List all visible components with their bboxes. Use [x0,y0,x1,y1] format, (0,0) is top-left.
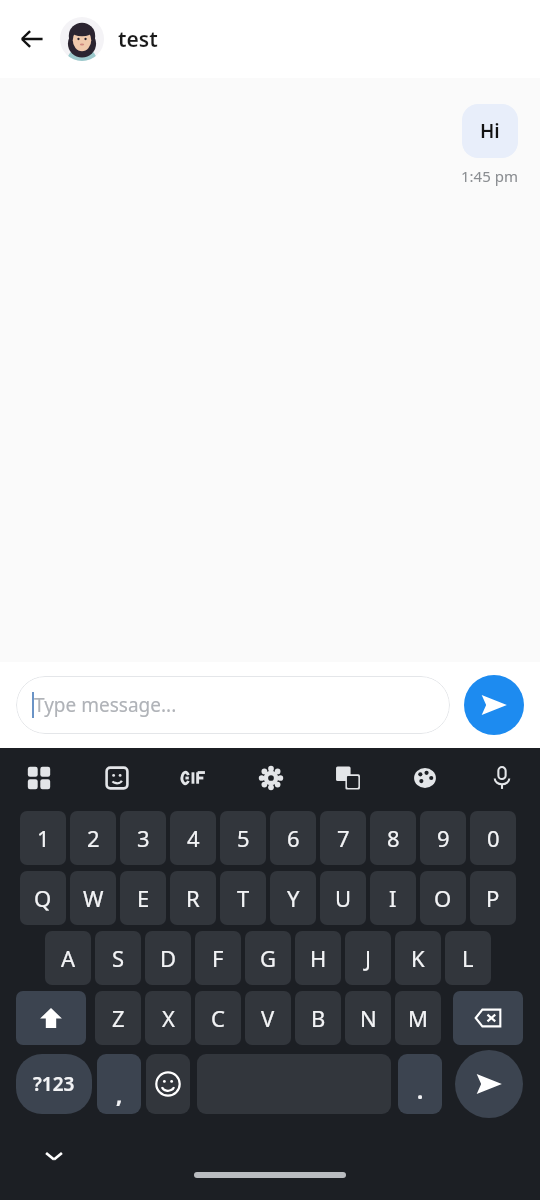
staticText: X [162,1003,175,1033]
button[interactable]: ?123 [16,1054,92,1114]
button[interactable]: Hi [462,104,518,158]
staticText: . [417,1075,424,1105]
staticText: 4 [187,823,200,853]
button[interactable]: N [345,991,391,1045]
staticText: 9 [437,823,450,853]
button[interactable]: Send [455,1050,523,1118]
staticText: I [389,883,397,913]
staticText: Type message... [34,692,177,718]
button[interactable]: I [370,871,416,925]
staticText: Z [112,1003,125,1033]
button[interactable]: O [420,871,466,925]
staticText: S [112,943,125,973]
button[interactable]: Backspace [453,991,523,1045]
button[interactable]: 4 [170,811,216,865]
button[interactable]: A [45,931,91,985]
button[interactable]: 9 [420,811,466,865]
staticText: C [211,1003,225,1033]
button[interactable]: Settings [232,748,309,808]
button[interactable]: F [195,931,241,985]
staticText: H [310,943,327,973]
button[interactable]: B [295,991,341,1045]
staticText: E [137,883,150,913]
staticText: B [311,1003,326,1033]
button[interactable]: M [395,991,441,1045]
button[interactable]: W [70,871,116,925]
button[interactable]: Apps [0,748,78,808]
staticText: L [462,943,474,973]
button[interactable]: U [320,871,366,925]
staticText: 6 [287,823,300,853]
button[interactable]: G [245,931,291,985]
button[interactable]: 3 [120,811,166,865]
button[interactable]: 6 [270,811,316,865]
button[interactable]: R [170,871,216,925]
button[interactable]: Translate [309,748,386,808]
button[interactable]: P [470,871,516,925]
button[interactable]: 1 [20,811,66,865]
button[interactable]: Hide keyboard [32,1134,76,1178]
staticText: Hi [480,118,500,144]
staticText: V [261,1003,275,1033]
button[interactable]: 8 [370,811,416,865]
staticText: N [360,1003,377,1033]
button[interactable]: S [95,931,141,985]
button[interactable]: Stickers [78,748,155,808]
button[interactable]: E [120,871,166,925]
button[interactable]: Shift [16,991,86,1045]
staticText: 5 [237,823,250,853]
button[interactable]: L [445,931,491,985]
staticText: O [434,883,452,913]
button[interactable] [60,17,104,61]
button[interactable]: Back [10,17,54,61]
staticText: R [186,883,200,913]
button[interactable]: K [395,931,441,985]
button[interactable]: V [245,991,291,1045]
staticText: 2 [87,823,100,853]
button[interactable]: 7 [320,811,366,865]
button[interactable]: GIF [155,748,232,808]
staticText: test [118,25,158,54]
button[interactable]: X [145,991,191,1045]
staticText: 8 [387,823,400,853]
staticText: M [408,1003,428,1033]
staticText: 1:45 pm [461,166,518,186]
staticText: W [83,883,104,913]
button[interactable]: Voice input [463,748,540,808]
staticText: , [116,1079,123,1109]
button[interactable]: 2 [70,811,116,865]
staticText: K [411,943,425,973]
button[interactable]: Emoji [146,1054,190,1114]
button[interactable]: H [295,931,341,985]
button[interactable]: . [398,1054,442,1114]
staticText: F [212,943,224,973]
staticText: Q [34,883,52,913]
staticText: A [61,943,76,973]
staticText: 7 [337,823,350,853]
button[interactable]: D [145,931,191,985]
staticText: J [365,943,372,973]
button[interactable]: Z [95,991,141,1045]
staticText: U [335,883,352,913]
button[interactable]: Y [270,871,316,925]
staticText: T [237,883,250,913]
button[interactable]: J [345,931,391,985]
button[interactable]: T [220,871,266,925]
button[interactable]: 0 [470,811,516,865]
staticText: 0 [487,823,500,853]
button[interactable]: C [195,991,241,1045]
staticText: 3 [137,823,150,853]
staticText: ?123 [33,1071,75,1097]
staticText: G [260,943,277,973]
staticText: D [160,943,177,973]
button[interactable]: Q [20,871,66,925]
button[interactable]: Send [464,675,524,735]
button[interactable]: Type message... [16,676,450,734]
button[interactable]: , [97,1054,141,1114]
staticText: P [486,883,500,913]
button[interactable]: Theme [386,748,463,808]
staticText: 1 [37,823,50,853]
staticText: Y [287,883,300,913]
button[interactable]: 5 [220,811,266,865]
